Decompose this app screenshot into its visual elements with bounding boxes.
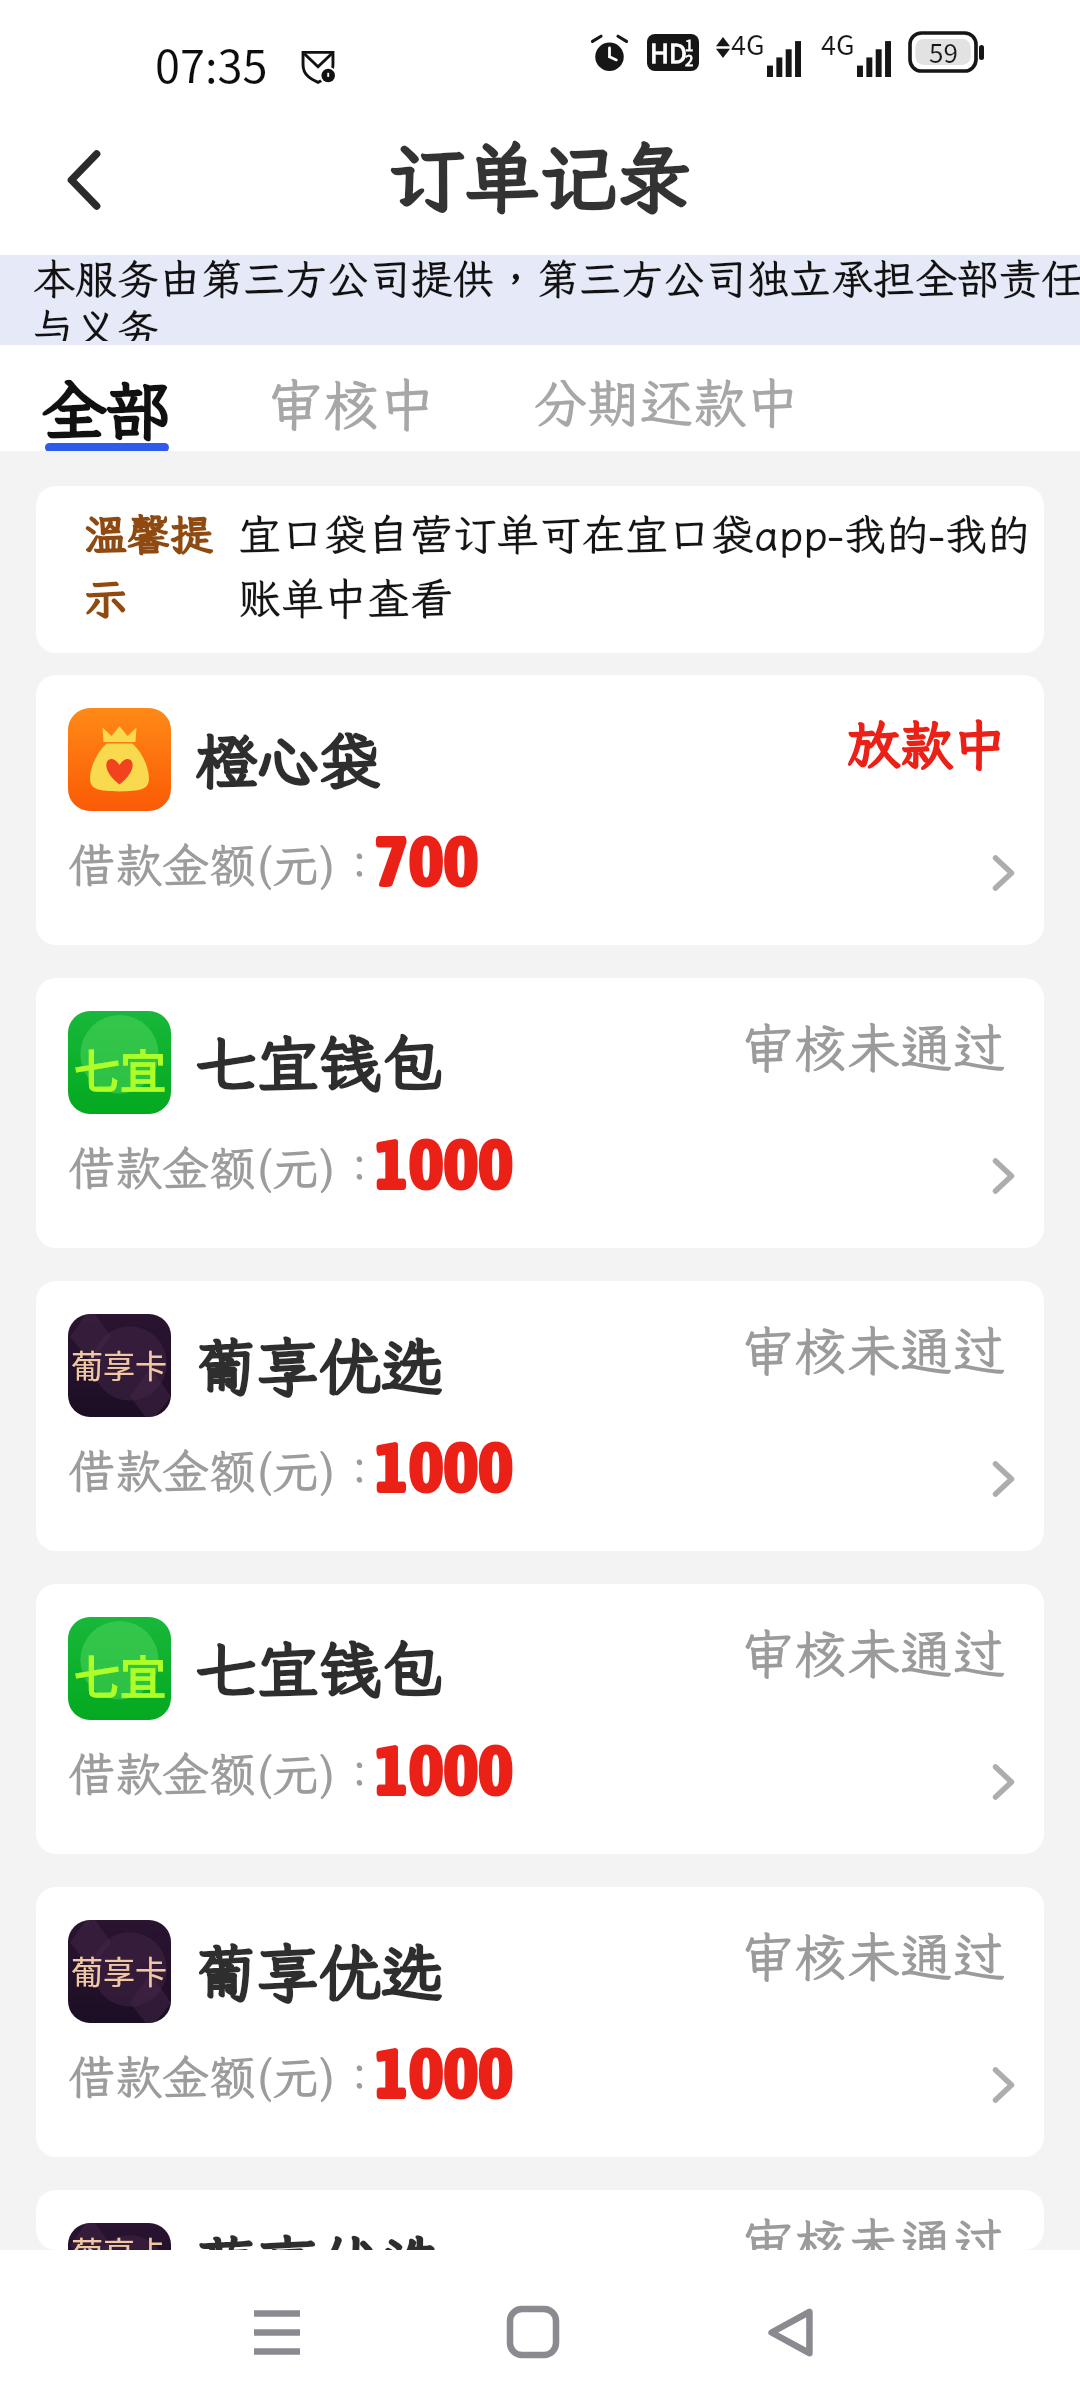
staticText: 葡享卡 bbox=[71, 1341, 168, 1387]
staticText: 4G bbox=[821, 24, 855, 63]
staticText: 宜口袋自营订单可在宜口袋app-我的-我的 账单中查看 bbox=[238, 506, 1031, 626]
staticText: 59 bbox=[929, 33, 958, 71]
staticText: 审核未通过 bbox=[741, 2207, 1006, 2250]
staticText: 温馨提示 bbox=[84, 506, 216, 626]
button[interactable]: Back bbox=[726, 2268, 854, 2396]
button[interactable]: 七宜 bbox=[36, 1584, 1044, 1854]
staticText: 分期还款中 bbox=[534, 367, 799, 437]
staticText: 审核未通过 bbox=[741, 1012, 1006, 1082]
staticText: 审核中 bbox=[267, 367, 435, 441]
staticText: 葡享优选 bbox=[195, 1325, 444, 1407]
staticText: 借款金额(元)： bbox=[68, 833, 383, 895]
button[interactable]: Home bbox=[469, 2268, 597, 2396]
staticText: 七宜钱包 bbox=[195, 1022, 444, 1104]
staticText: 借款金额(元)： bbox=[68, 2045, 383, 2107]
button[interactable]: 七宜 bbox=[36, 978, 1044, 1248]
button[interactable]: 审核中 bbox=[262, 345, 440, 451]
staticText: 订单记录 bbox=[388, 127, 692, 227]
button[interactable]: 橙心袋 bbox=[36, 675, 1044, 945]
staticText: 审核未通过 bbox=[741, 1315, 1006, 1385]
staticText: 审核未通过 bbox=[741, 1921, 1006, 1991]
staticText: 1 bbox=[685, 34, 694, 56]
staticText: 1000 bbox=[374, 1121, 514, 1206]
staticText: 放款中 bbox=[847, 709, 1006, 779]
staticText: 葡享卡 bbox=[71, 1947, 168, 1993]
button[interactable]: Back bbox=[0, 104, 165, 255]
button[interactable]: 全部 bbox=[36, 345, 177, 451]
button[interactable]: 葡享卡 bbox=[36, 1281, 1044, 1551]
staticText: 4G bbox=[731, 24, 765, 63]
staticText: 七宜 bbox=[74, 1035, 166, 1102]
staticText: 七宜 bbox=[74, 1641, 166, 1708]
staticText: 借款金额(元)： bbox=[68, 1742, 383, 1804]
staticText: 1000 bbox=[374, 1424, 514, 1509]
staticText: 橙心袋 bbox=[195, 719, 382, 801]
staticText: 1000 bbox=[374, 1727, 514, 1812]
staticText: 七宜钱包 bbox=[195, 1628, 444, 1710]
button[interactable]: 分期还款中 bbox=[529, 345, 804, 451]
staticText: 07:35 bbox=[155, 31, 268, 96]
button[interactable]: Recent apps bbox=[213, 2268, 341, 2396]
staticText: 葡享优选 bbox=[195, 2223, 444, 2250]
staticText: 葡享优选 bbox=[195, 1931, 444, 2013]
staticText: 本服务由第三方公司提供，第三方公司独立承担全部责任 与义务 bbox=[33, 251, 1080, 341]
staticText: 全部 bbox=[41, 367, 172, 453]
staticText: 借款金额(元)： bbox=[68, 1439, 383, 1501]
staticText: 700 bbox=[374, 818, 479, 903]
staticText: 2 bbox=[685, 49, 694, 71]
staticText: 1000 bbox=[374, 2030, 514, 2115]
staticText: 葡享卡 bbox=[71, 2228, 168, 2250]
button[interactable]: 葡享卡 bbox=[36, 1887, 1044, 2157]
staticText: HD bbox=[650, 34, 687, 70]
button[interactable]: 葡享卡 bbox=[36, 2190, 1044, 2250]
staticText: 借款金额(元)： bbox=[68, 1136, 383, 1198]
staticText: 审核未通过 bbox=[741, 1618, 1006, 1688]
